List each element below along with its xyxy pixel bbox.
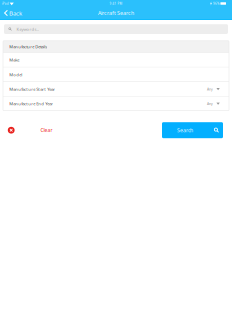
staticText: Search [177,127,193,134]
button[interactable]: Model [3,67,229,81]
staticText: Aircraft Search [98,9,134,17]
button[interactable]: Back [0,7,26,19]
button[interactable]: Keywords... [4,24,228,34]
staticText: Model [9,72,22,77]
staticText: Back [9,9,22,17]
staticText: 96% [213,1,219,5]
staticText: Clear [40,127,52,133]
staticText: Any [207,101,213,106]
staticText: Manufacture End Year [9,101,53,106]
staticText: Manufacture Start Year [9,86,55,92]
staticText: Make [9,57,19,63]
button[interactable]: Clear [0,122,52,138]
staticText: Manufacture Details [9,44,47,49]
staticText: Any [207,87,213,91]
staticText: Keywords... [16,26,39,32]
staticText: 9:41 PM [109,1,122,5]
button[interactable]: Make [3,53,229,67]
staticText: iPad [2,1,9,5]
button[interactable]: Manufacture Start Year [3,82,229,96]
button[interactable]: Search [162,122,223,138]
button[interactable]: Manufacture End Year [3,97,229,111]
